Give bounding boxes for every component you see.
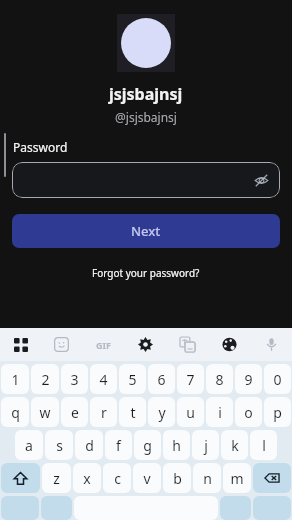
button[interactable]: i xyxy=(206,397,233,427)
staticText: 3 xyxy=(70,370,79,389)
staticText: r xyxy=(101,403,107,422)
staticText: GIF xyxy=(96,339,111,351)
button[interactable]: r xyxy=(90,397,117,427)
staticText: t xyxy=(130,403,136,422)
button[interactable]: 2 xyxy=(31,364,59,394)
button[interactable]: Forgot your password? xyxy=(84,263,208,283)
button[interactable]: Show password xyxy=(12,162,280,198)
staticText: u xyxy=(186,403,195,422)
button[interactable]: Enter xyxy=(253,496,291,520)
staticText: n xyxy=(203,469,212,488)
button[interactable]: s xyxy=(45,430,73,460)
button[interactable]: x xyxy=(73,463,101,493)
staticText: 5 xyxy=(128,370,137,389)
staticText: e xyxy=(71,403,79,422)
staticText: x xyxy=(83,469,91,488)
staticText: d xyxy=(85,436,94,455)
staticText: Forgot your password? xyxy=(92,266,200,280)
button[interactable]: m xyxy=(223,463,251,493)
button[interactable]: 0 xyxy=(264,364,291,394)
staticText: 6 xyxy=(157,370,166,389)
staticText: 1 xyxy=(11,370,20,389)
button[interactable]: p xyxy=(264,397,291,427)
button[interactable]: j xyxy=(192,430,219,460)
button[interactable]: 1 xyxy=(1,364,29,394)
staticText: 0 xyxy=(273,370,282,389)
button[interactable]: h xyxy=(163,430,190,460)
button[interactable]: e xyxy=(61,397,88,427)
button[interactable]: 7 xyxy=(177,364,204,394)
staticText: 2 xyxy=(41,370,50,389)
button[interactable]: f xyxy=(105,430,132,460)
button[interactable]: v xyxy=(133,463,161,493)
button[interactable]: Themes xyxy=(208,328,250,361)
staticText: z xyxy=(53,469,60,488)
button[interactable]: d xyxy=(75,430,103,460)
button[interactable]: k xyxy=(221,430,248,460)
button[interactable]: 4 xyxy=(90,364,117,394)
staticText: o xyxy=(244,403,253,422)
staticText: h xyxy=(172,436,181,455)
button[interactable]: Voice input xyxy=(250,328,292,361)
staticText: b xyxy=(173,469,182,488)
staticText: Password xyxy=(13,139,68,155)
staticText: c xyxy=(114,469,121,488)
button[interactable]: Translate xyxy=(166,328,208,361)
staticText: a xyxy=(25,436,33,455)
button[interactable]: 6 xyxy=(148,364,175,394)
staticText: jsjsbajnsj xyxy=(109,83,183,105)
button[interactable]: u xyxy=(177,397,204,427)
button[interactable]: Emoji xyxy=(41,328,82,361)
button[interactable]: g xyxy=(134,430,161,460)
staticText: w xyxy=(39,403,51,422)
staticText: f xyxy=(116,436,121,455)
staticText: m xyxy=(230,469,244,488)
staticText: v xyxy=(143,469,151,488)
staticText: j xyxy=(204,436,208,455)
button[interactable]: n xyxy=(193,463,221,493)
button[interactable]: Backspace xyxy=(253,463,291,493)
button[interactable]: Next xyxy=(12,214,280,248)
button[interactable]: c xyxy=(103,463,131,493)
button[interactable]: Show password xyxy=(250,169,272,191)
button[interactable]: 8 xyxy=(206,364,233,394)
staticText: 7 xyxy=(186,370,195,389)
staticText: q xyxy=(11,403,20,422)
button[interactable]: 3 xyxy=(61,364,88,394)
button[interactable]: b xyxy=(163,463,191,493)
staticText: l xyxy=(262,436,266,455)
button[interactable]: o xyxy=(235,397,262,427)
staticText: g xyxy=(143,436,152,455)
button[interactable]: 5 xyxy=(119,364,146,394)
button[interactable]: w xyxy=(31,397,59,427)
staticText: p xyxy=(273,403,282,422)
button[interactable]: y xyxy=(148,397,175,427)
button[interactable]: Comma xyxy=(41,496,72,520)
button[interactable]: q xyxy=(1,397,29,427)
button[interactable]: t xyxy=(119,397,146,427)
staticText: k xyxy=(231,436,239,455)
staticText: s xyxy=(56,436,63,455)
button[interactable]: z xyxy=(42,463,71,493)
staticText: @jsjsbajnsj xyxy=(115,109,177,125)
button[interactable]: Settings xyxy=(124,328,166,361)
button[interactable]: Period xyxy=(220,496,251,520)
button[interactable]: Clipboard xyxy=(0,328,41,361)
staticText: y xyxy=(158,403,166,422)
staticText: i xyxy=(218,403,222,422)
button[interactable]: Shift xyxy=(1,463,40,493)
button[interactable]: GIF xyxy=(82,328,124,361)
staticText: 9 xyxy=(244,370,253,389)
button[interactable]: l xyxy=(250,430,277,460)
button[interactable]: a xyxy=(15,430,43,460)
button[interactable]: 9 xyxy=(235,364,262,394)
staticText: 4 xyxy=(99,370,108,389)
staticText: Next xyxy=(131,222,161,240)
staticText: 8 xyxy=(215,370,224,389)
button[interactable]: Symbols xyxy=(1,496,39,520)
